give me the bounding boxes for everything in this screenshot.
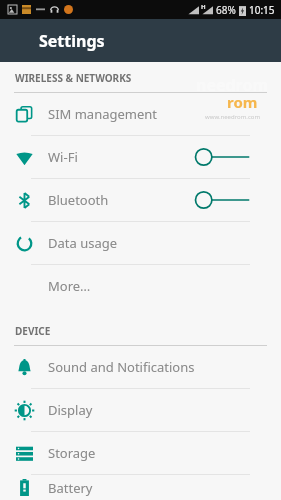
button[interactable]: Toggle bbox=[194, 187, 251, 213]
button[interactable]: Bluetooth bbox=[0, 179, 281, 221]
staticText: Data usage bbox=[48, 234, 281, 252]
staticText: needrom bbox=[196, 74, 269, 96]
staticText: www.needrom.com bbox=[205, 113, 261, 121]
button[interactable]: Wi-Fi bbox=[0, 136, 281, 178]
button[interactable]: Toggle bbox=[194, 144, 251, 170]
staticText: H bbox=[201, 3, 206, 11]
staticText: rom bbox=[227, 92, 258, 112]
staticText: Bluetooth bbox=[48, 191, 194, 209]
staticText: WIRELESS & NETWORKS bbox=[15, 71, 132, 85]
staticText: Battery bbox=[48, 479, 281, 497]
staticText: Sound and Notifications bbox=[48, 358, 281, 376]
staticText: SIM management bbox=[48, 105, 281, 123]
staticText: Settings bbox=[39, 30, 105, 52]
staticText: Display bbox=[48, 401, 281, 419]
button[interactable]: SIM management bbox=[0, 93, 281, 135]
staticText: 68% bbox=[216, 3, 236, 17]
button[interactable]: More… bbox=[0, 265, 281, 307]
staticText: Storage bbox=[48, 444, 281, 462]
button[interactable]: Data usage bbox=[0, 222, 281, 264]
button[interactable]: Battery bbox=[0, 475, 281, 500]
button[interactable]: Storage bbox=[0, 432, 281, 474]
staticText: Wi-Fi bbox=[48, 148, 194, 166]
staticText: More… bbox=[48, 277, 281, 295]
staticText: DEVICE bbox=[15, 324, 51, 338]
button[interactable]: Display bbox=[0, 389, 281, 431]
staticText: 10:15 bbox=[249, 3, 275, 17]
button[interactable]: Sound and Notifications bbox=[0, 346, 281, 388]
